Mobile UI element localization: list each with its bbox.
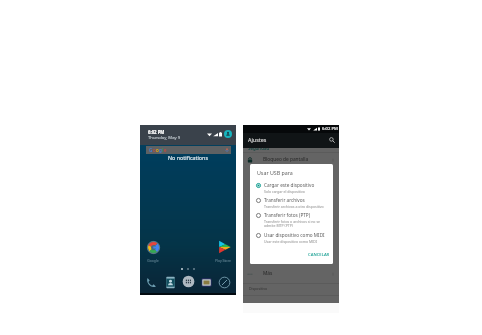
staticText: CANCELAR: [308, 252, 330, 258]
button[interactable]: Más: [243, 267, 339, 280]
staticText: No notifications: [140, 154, 236, 161]
staticText: Transferir fotos o archivos si no se adm…: [264, 219, 321, 228]
staticText: Seguridad: [248, 145, 270, 151]
staticText: Más: [263, 270, 273, 277]
staticText: Usar este dispositivo como MIDI: [264, 239, 318, 244]
button[interactable]: [217, 240, 231, 254]
staticText: g: [159, 147, 162, 153]
button[interactable]: CANCELAR: [308, 252, 330, 258]
staticText: Usar USB para: [257, 169, 293, 176]
staticText: Thursday, May 9: [148, 135, 181, 141]
staticText: Solo cargar el dispositivo: [264, 189, 305, 194]
staticText: Usar dispositivo como MIDI: [264, 232, 325, 238]
button[interactable]: Search: [328, 136, 336, 144]
button[interactable]: Phone: [145, 276, 158, 289]
staticText: e: [164, 147, 167, 153]
other: All apps: [182, 275, 195, 288]
staticText: Ajustes: [248, 136, 267, 143]
button[interactable]: Contacts: [164, 276, 177, 289]
staticText: Cargar este dispositivo: [264, 182, 315, 188]
staticText: l: [162, 147, 164, 153]
button[interactable]: Transferir archivos: [256, 197, 330, 209]
button[interactable]: [147, 241, 160, 254]
button[interactable]: Messages: [200, 276, 213, 289]
other: Voice search: [225, 148, 229, 152]
staticText: o: [156, 147, 159, 153]
staticText: o: [153, 147, 156, 153]
button[interactable]: Cargar este dispositivo: [256, 182, 330, 194]
button[interactable]: All apps: [182, 275, 195, 288]
staticText: Transferir archivos a otro dispositivo: [264, 204, 324, 209]
button[interactable]: Usar dispositivo como MIDI: [256, 232, 330, 244]
button[interactable]: G: [146, 146, 231, 154]
button[interactable]: Browser: [218, 276, 231, 289]
staticText: 6:02 PM: [322, 126, 338, 132]
button[interactable]: Bloqueo de pantalla: [243, 153, 339, 166]
staticText: Transferir fotos (PTP): [264, 212, 311, 218]
staticText: Transferir archivos: [264, 197, 305, 203]
other: Phone: [145, 276, 158, 289]
other: Messages: [200, 276, 213, 289]
staticText: G: [149, 147, 153, 153]
button[interactable]: Transferir fotos (PTP): [256, 212, 330, 228]
other: Contacts: [164, 276, 177, 289]
staticText: Dispositivo: [249, 286, 268, 291]
staticText: Google: [143, 258, 163, 263]
staticText: 6:02 PM: [148, 129, 165, 135]
other: Browser: [218, 276, 231, 289]
staticText: Bloqueo de pantalla: [263, 156, 309, 163]
staticText: Play Store: [213, 258, 233, 263]
